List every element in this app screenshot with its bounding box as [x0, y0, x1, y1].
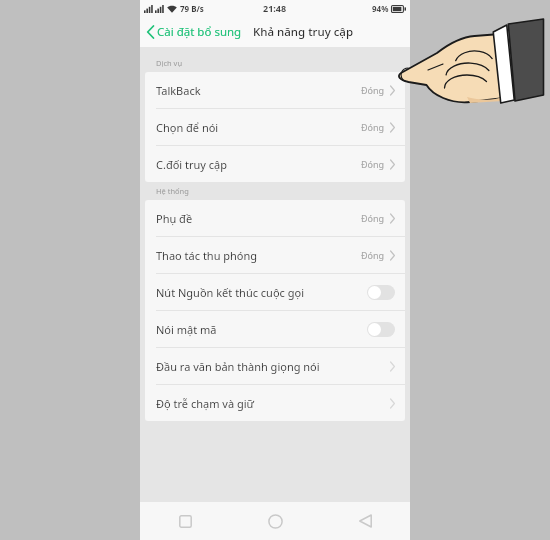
staticText: 94% — [372, 3, 389, 14]
staticText: Hệ thống — [156, 186, 189, 196]
button[interactable]: Chọn để nói — [145, 109, 405, 146]
button[interactable]: Thao tác thu phóng — [145, 237, 405, 274]
staticText: 21:48 — [263, 2, 287, 14]
button[interactable]: Back — [320, 502, 410, 540]
staticText: Khả năng truy cập — [253, 24, 354, 40]
staticText: Đóng — [361, 249, 385, 261]
button[interactable]: Cài đặt bổ sung — [140, 19, 248, 45]
staticText: 79 B/s — [180, 3, 204, 14]
staticText: C.đối truy cập — [156, 157, 361, 172]
button[interactable]: Recents — [140, 502, 230, 540]
button[interactable]: TalkBack — [145, 72, 405, 109]
staticText: Đóng — [361, 158, 385, 170]
staticText: Độ trễ chạm và giữ — [156, 396, 390, 411]
staticText: Đóng — [361, 212, 385, 224]
button[interactable]: Phụ đề — [145, 200, 405, 237]
staticText: Phụ đề — [156, 211, 361, 226]
button[interactable]: Nói mật mã — [145, 311, 405, 348]
button[interactable]: C.đối truy cập — [145, 146, 405, 182]
button[interactable]: Đầu ra văn bản thành giọng nói — [145, 348, 405, 385]
staticText: Cài đặt bổ sung — [157, 24, 242, 40]
staticText: Đóng — [361, 121, 385, 133]
staticText: Thao tác thu phóng — [156, 248, 361, 263]
staticText: Đầu ra văn bản thành giọng nói — [156, 359, 390, 374]
staticText: Dịch vụ — [156, 58, 183, 68]
button[interactable]: Home — [230, 502, 320, 540]
staticText: TalkBack — [156, 83, 361, 98]
staticText: Nút Nguồn kết thúc cuộc gọi — [156, 285, 367, 300]
button[interactable]: Độ trễ chạm và giữ — [145, 385, 405, 421]
button[interactable]: Nút Nguồn kết thúc cuộc gọi — [145, 274, 405, 311]
staticText: Đóng — [361, 84, 385, 96]
staticText: Chọn để nói — [156, 120, 361, 135]
staticText: Nói mật mã — [156, 322, 367, 337]
